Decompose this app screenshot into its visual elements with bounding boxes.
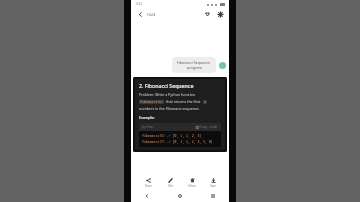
staticText: Copy code <box>200 125 218 129</box>
button[interactable]: Settings <box>215 9 225 19</box>
button[interactable]: Save <box>203 177 223 188</box>
button[interactable]: Back <box>131 190 163 202</box>
staticText: Delete <box>188 184 196 188</box>
staticText: 1:624 <box>146 12 156 17</box>
staticText: 2. Fibonacci Sequence <box>139 82 194 89</box>
staticText: program <box>187 65 202 70</box>
button[interactable]: Bookmark <box>202 9 212 19</box>
staticText: 12:34 <box>135 2 142 6</box>
staticText: Save <box>210 184 216 188</box>
staticText: numbers in the Fibonacci sequence. <box>139 106 200 111</box>
staticText: Problem: Write a Python function <box>139 92 195 97</box>
button[interactable]: 2. Fibonacci Sequence <box>135 79 225 150</box>
staticText: python <box>142 125 154 129</box>
button[interactable]: Edit <box>159 177 181 188</box>
staticText: Edit <box>168 184 173 188</box>
button[interactable]: Copy code <box>196 125 218 129</box>
staticText: Example: <box>139 115 155 120</box>
staticText: Fibonacci Sequence <box>177 60 211 65</box>
staticText: fibonacci(n) <box>140 100 163 104</box>
button[interactable]: Back <box>135 9 145 19</box>
staticText: fibonacci(7) -> [0, 1, 1, 2, 3, 5, 8] <box>142 140 213 144</box>
button[interactable]: Recents <box>196 190 229 202</box>
staticText: that returns the first <box>166 99 201 104</box>
staticText: fibonacci(5) -> [0, 1, 1, 2, 3] <box>142 134 202 138</box>
button[interactable]: Profile <box>219 62 226 69</box>
staticText: Share <box>145 184 152 188</box>
button[interactable]: Share <box>137 177 159 188</box>
button[interactable]: Delete <box>181 177 203 188</box>
staticText: n <box>204 100 206 104</box>
button[interactable]: Home <box>163 190 196 202</box>
button[interactable]: Fibonacci Sequence <box>172 57 216 73</box>
